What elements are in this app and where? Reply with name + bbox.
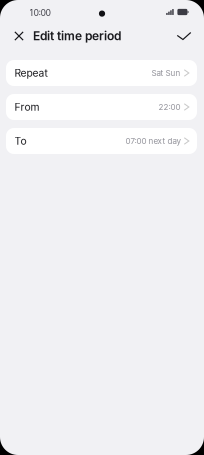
button[interactable]: Repeat [6,60,197,86]
staticText: 07:00 next day [125,136,180,146]
staticText: Sat Sun [151,68,180,78]
staticText: Repeat [14,67,47,79]
staticText: 10:00 [29,8,50,18]
button[interactable]: Done [174,25,194,47]
staticText: From [14,101,39,113]
staticText: 22:00 [158,102,180,112]
button[interactable]: Close [9,25,29,47]
button[interactable]: From [6,94,197,120]
button[interactable]: To [6,128,197,154]
staticText: Edit time period [33,29,121,43]
staticText: To [14,135,26,147]
